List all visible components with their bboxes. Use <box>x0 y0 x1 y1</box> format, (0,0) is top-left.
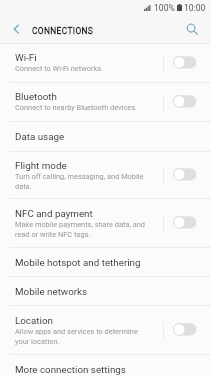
button[interactable]: Mobile hotspot and tethering <box>0 248 211 276</box>
staticText: CONNECTIONS <box>32 26 94 36</box>
staticText: 100% <box>154 3 175 13</box>
staticText: Turn off calling, messaging, and Mobile … <box>15 172 144 190</box>
button[interactable]: Bluetooth <box>0 83 211 121</box>
staticText: Mobile hotspot and tethering <box>15 257 141 268</box>
button[interactable]: Search <box>181 15 211 43</box>
button[interactable]: Data usage <box>0 122 211 151</box>
staticText: Wi-Fi <box>15 52 37 63</box>
button[interactable]: Back <box>0 15 32 43</box>
staticText: Mobile networks <box>15 286 88 297</box>
button[interactable]: Mobile networks <box>0 277 211 305</box>
staticText: Allow apps and services to determine you… <box>15 327 138 345</box>
staticText: Data usage <box>15 131 65 142</box>
staticText: 10:00 <box>184 3 206 13</box>
staticText: Connect to Wi-Fi networks. <box>15 64 103 73</box>
staticText: Location <box>15 315 53 326</box>
button[interactable]: Flight mode <box>0 152 211 198</box>
button[interactable]: Location <box>0 306 211 354</box>
staticText: Flight mode <box>15 160 67 171</box>
staticText: Make mobile payments, share data, and re… <box>15 220 145 238</box>
button[interactable]: More connection settings <box>0 355 211 376</box>
staticText: Bluetooth <box>15 91 57 102</box>
button[interactable]: Wi-Fi <box>0 44 211 82</box>
staticText: Connect to nearby Bluetooth devices. <box>15 103 138 112</box>
staticText: More connection settings <box>15 364 126 375</box>
button[interactable]: NFC and payment <box>0 199 211 247</box>
staticText: NFC and payment <box>15 208 93 219</box>
